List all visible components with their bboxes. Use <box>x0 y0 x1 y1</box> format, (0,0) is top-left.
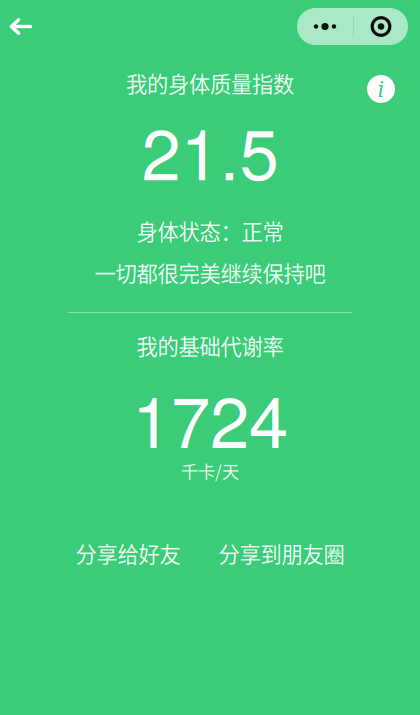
button[interactable]: Back <box>0 8 45 45</box>
staticText: 分享到朋友圈 <box>218 538 344 569</box>
staticText: i <box>377 77 384 102</box>
button[interactable]: Information <box>367 75 395 103</box>
button[interactable]: 分享到朋友圈 <box>218 538 344 569</box>
staticText: 身体状态：正常 <box>136 215 283 246</box>
staticText: 我的身体质量指数 <box>126 68 294 98</box>
button[interactable]: 分享给好友 <box>75 538 180 569</box>
staticText: 千卡/天 <box>181 458 239 483</box>
staticText: 一切都很完美继续保持吧 <box>94 257 325 288</box>
staticText: 21.5 <box>141 99 278 200</box>
staticText: 1724 <box>132 367 288 468</box>
staticText: 分享给好友 <box>75 538 180 569</box>
button[interactable]: More <box>297 8 408 45</box>
staticText: 我的基础代谢率 <box>136 330 283 361</box>
